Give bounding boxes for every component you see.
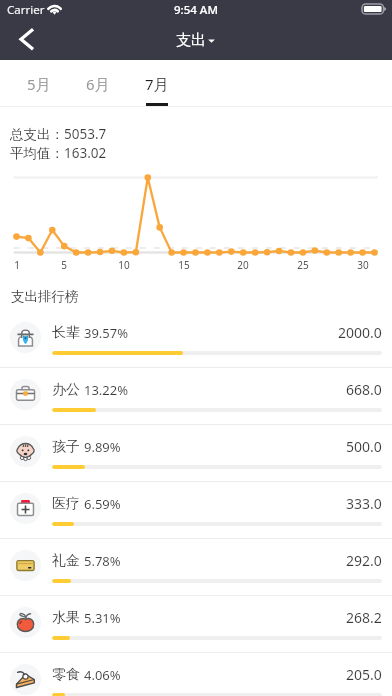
- staticText: 10: [118, 258, 130, 272]
- button[interactable]: 水果: [0, 596, 392, 652]
- staticText: 水果: [52, 609, 80, 627]
- staticText: 205.0: [346, 665, 382, 684]
- button[interactable]: 长辈: [0, 311, 392, 367]
- button[interactable]: 礼金: [0, 539, 392, 595]
- staticText: 平均值：163.02: [10, 144, 107, 162]
- staticText: 办公: [52, 381, 80, 399]
- staticText: 9.89%: [84, 438, 121, 456]
- button[interactable]: 6月: [69, 60, 127, 107]
- staticText: 39.57%: [84, 324, 129, 342]
- staticText: 13.22%: [84, 381, 129, 399]
- staticText: Carrier: [7, 2, 45, 18]
- staticText: 15: [178, 258, 190, 272]
- staticText: 9:54 AM: [174, 2, 218, 18]
- staticText: 268.2: [346, 608, 382, 627]
- staticText: 礼金: [52, 552, 80, 570]
- staticText: 292.0: [346, 551, 382, 570]
- staticText: 6月: [86, 74, 110, 94]
- staticText: 500.0: [346, 437, 382, 456]
- staticText: 孩子: [52, 438, 80, 456]
- staticText: 5: [61, 258, 67, 272]
- staticText: 668.0: [346, 380, 382, 399]
- button[interactable]: 孩子: [0, 425, 392, 481]
- staticText: 支出排行榜: [11, 288, 79, 305]
- staticText: 20: [237, 258, 249, 272]
- staticText: 总支出：5053.7: [10, 125, 107, 143]
- staticText: 30: [357, 258, 369, 272]
- staticText: 5.78%: [84, 552, 121, 570]
- staticText: 5月: [27, 74, 51, 94]
- staticText: 支出: [176, 31, 206, 50]
- staticText: 零食: [52, 666, 80, 684]
- button[interactable]: 支出: [176, 31, 216, 50]
- staticText: 长辈: [52, 324, 80, 342]
- staticText: 5.31%: [84, 609, 121, 627]
- button[interactable]: 医疗: [0, 482, 392, 538]
- staticText: 2000.0: [338, 323, 382, 342]
- button[interactable]: 7月: [128, 60, 186, 107]
- staticText: 医疗: [52, 495, 80, 513]
- staticText: 333.0: [346, 494, 382, 513]
- staticText: 6.59%: [84, 495, 121, 513]
- staticText: 4.06%: [84, 666, 121, 684]
- button[interactable]: 办公: [0, 368, 392, 424]
- staticText: 1: [14, 258, 20, 272]
- staticText: 25: [297, 258, 309, 272]
- staticText: 7月: [145, 74, 169, 94]
- button[interactable]: Back: [0, 20, 46, 60]
- button[interactable]: 零食: [0, 653, 392, 696]
- button[interactable]: 5月: [10, 60, 68, 107]
